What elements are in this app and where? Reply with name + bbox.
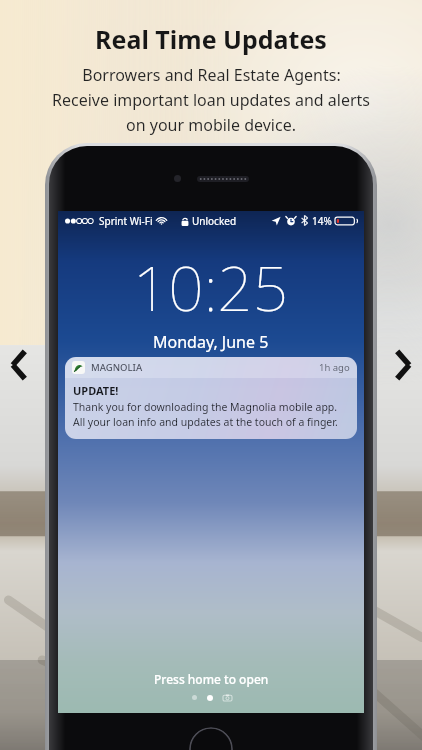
button[interactable]: Next screenshot — [382, 339, 422, 391]
button[interactable]: Previous screenshot — [0, 339, 40, 391]
staticText: Monday, June 5 — [153, 331, 269, 353]
staticText: Receive important loan updates and alert… — [52, 89, 370, 111]
button[interactable]: MAGNOLIA — [65, 357, 357, 439]
staticText: All your loan info and updates at the to… — [73, 415, 338, 429]
staticText: MAGNOLIA — [91, 361, 143, 374]
staticText: UPDATE! — [73, 383, 119, 398]
staticText: Thank you for downloading the Magnolia m… — [73, 400, 338, 414]
button[interactable]: Home button — [189, 727, 233, 750]
staticText: 10:25 — [133, 245, 289, 329]
staticText: Sprint Wi-Fi — [99, 214, 153, 228]
staticText: Unlocked — [192, 214, 237, 228]
staticText: Borrowers and Real Estate Agents: — [82, 64, 341, 86]
staticText: Real Time Updates — [95, 22, 327, 56]
staticText: on your mobile device. — [126, 114, 296, 136]
staticText: 14% — [312, 214, 332, 228]
staticText: 1h ago — [319, 361, 350, 374]
staticText: Press home to open — [154, 671, 269, 687]
